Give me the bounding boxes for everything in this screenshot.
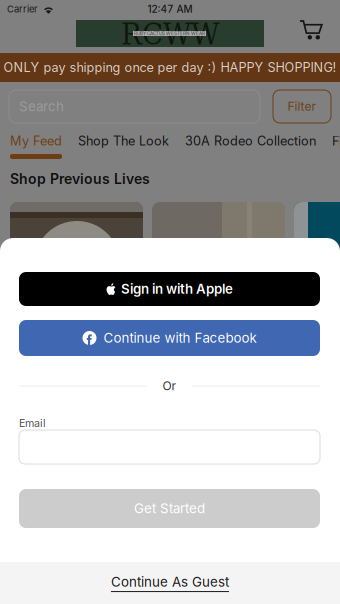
button[interactable]: 30A Rodeo Collection — [185, 133, 316, 149]
staticText: Email — [19, 416, 46, 429]
staticText: Search — [19, 98, 64, 114]
staticText: Shop Previous Lives — [10, 170, 150, 187]
button[interactable]: Filter — [273, 90, 331, 123]
staticText: 30A Rodeo Collection — [185, 133, 316, 149]
button[interactable]: Cart — [294, 17, 328, 43]
button[interactable]: Continue As Guest — [0, 562, 340, 604]
staticText: Shop The Look — [78, 133, 169, 149]
staticText: 12:47 AM — [147, 3, 192, 15]
button[interactable]: Get Started — [19, 489, 320, 528]
staticText: RUBY CACTUS WESTERN WEAR — [134, 31, 205, 36]
button[interactable]: Fi — [332, 133, 340, 149]
button[interactable]: Sign in with Apple — [19, 272, 320, 306]
button[interactable]: My Feed — [10, 133, 62, 149]
staticText: ONLY pay shipping once per day :) HAPPY … — [3, 60, 336, 75]
staticText: Continue with Facebook — [103, 330, 256, 346]
staticText: Or — [162, 379, 176, 393]
staticText: Continue As Guest — [111, 574, 229, 590]
button[interactable]: Shop The Look — [78, 133, 169, 149]
staticText: Fi — [332, 133, 340, 149]
staticText: Sign in with Apple — [121, 281, 233, 297]
staticText: RCWW — [121, 16, 219, 52]
button[interactable]: Continue with Facebook — [19, 320, 320, 356]
staticText: Filter — [287, 99, 316, 114]
staticText: My Feed — [10, 133, 62, 149]
staticText: Get Started — [134, 500, 205, 516]
staticText: Carrier — [7, 3, 38, 15]
